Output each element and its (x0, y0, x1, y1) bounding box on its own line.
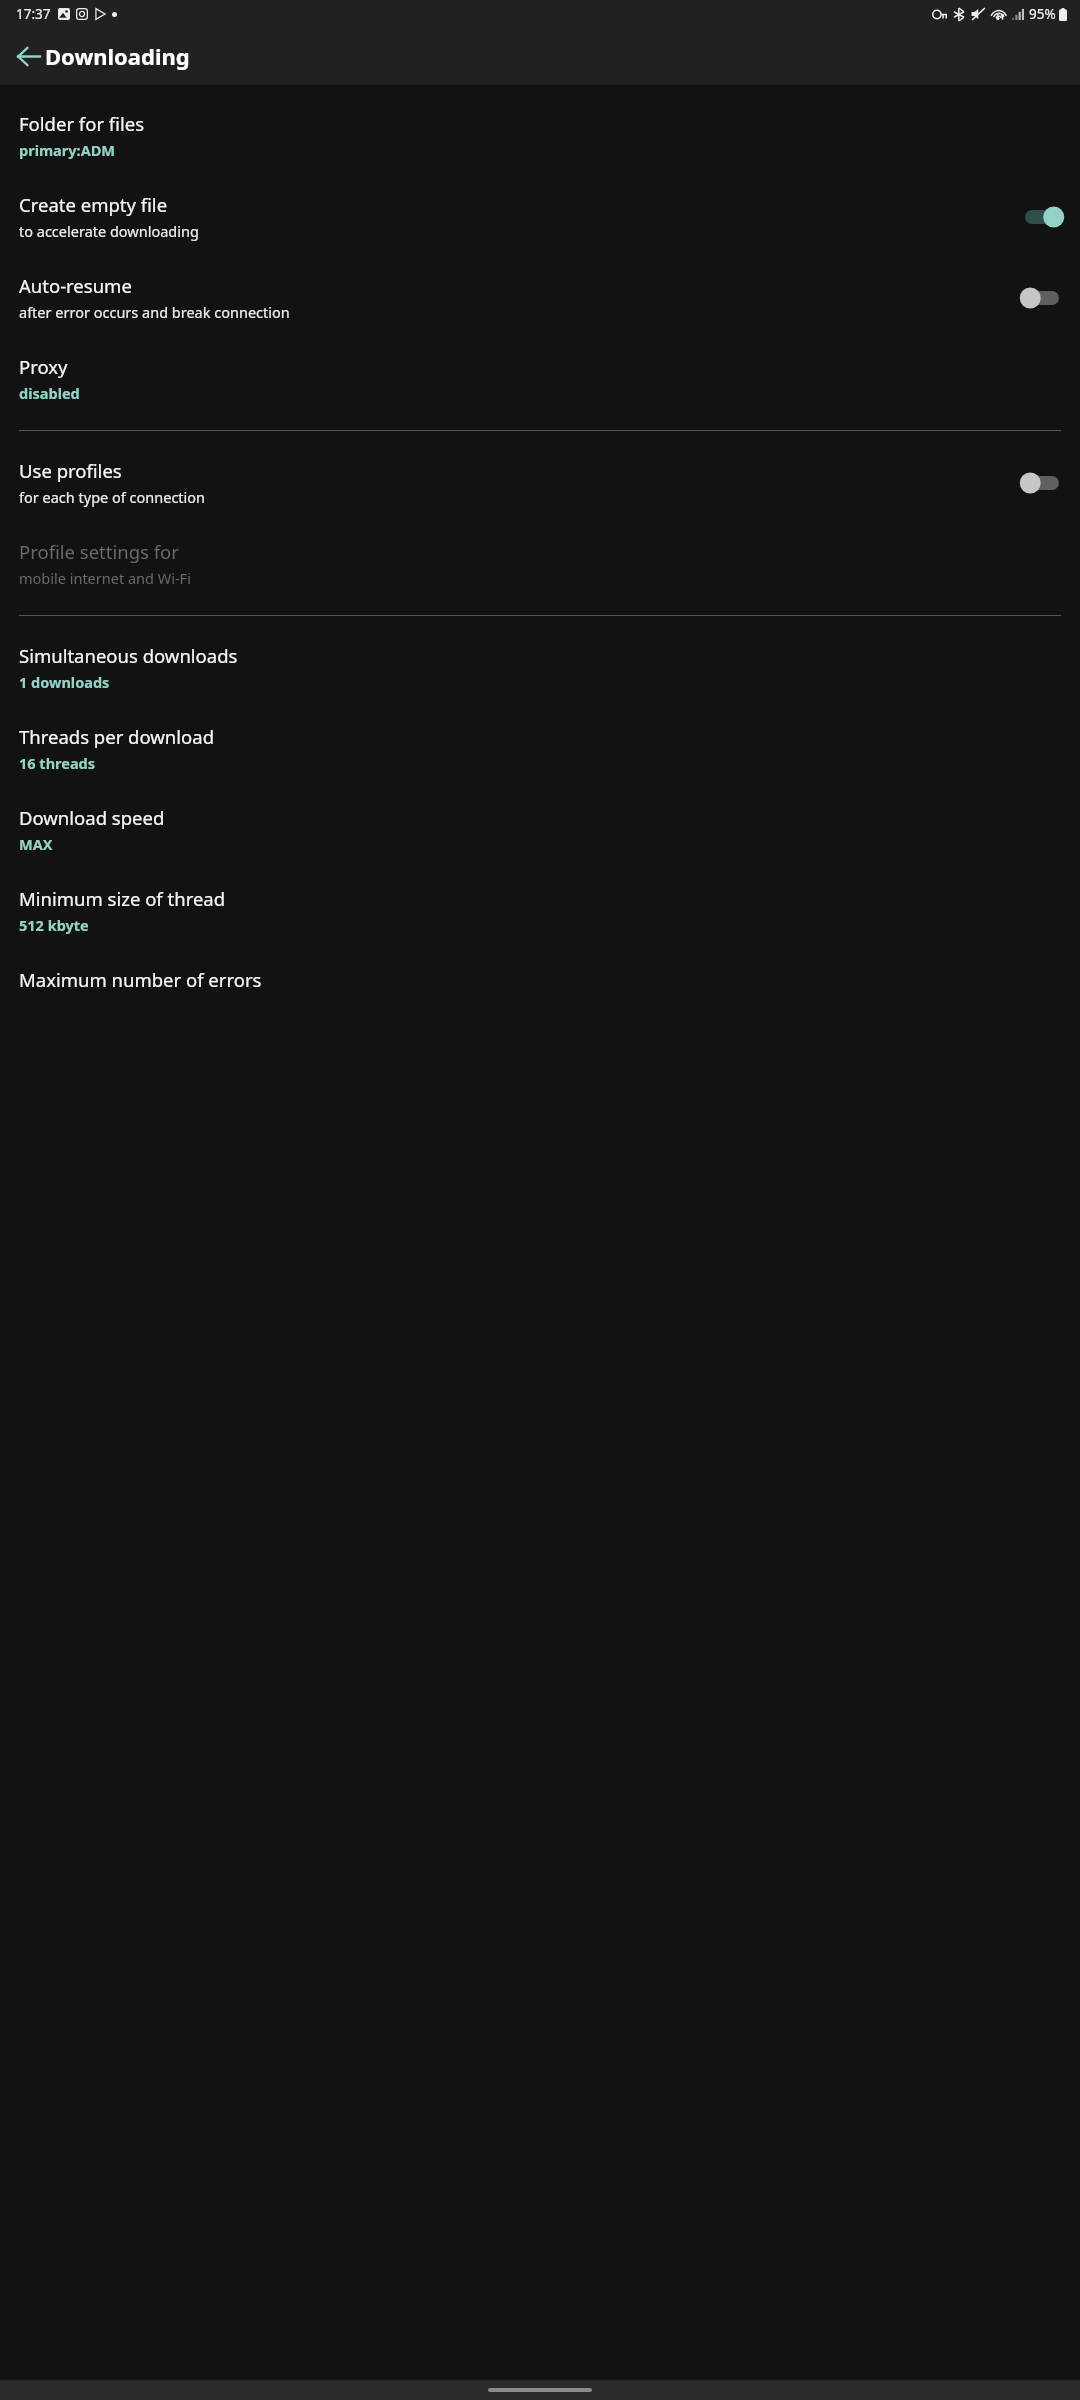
staticText: mobile internet and Wi-Fi (19, 568, 191, 588)
button[interactable]: Enabled (1019, 203, 1065, 231)
button[interactable]: Threads per download (0, 708, 1080, 789)
staticText: after error occurs and break connection (19, 302, 290, 322)
staticText: disabled (19, 383, 80, 403)
staticText: Auto-resume (19, 273, 132, 298)
staticText: Downloading (45, 41, 190, 71)
button[interactable]: Create empty file (0, 176, 1080, 257)
staticText: Create empty file (19, 192, 168, 217)
staticText: 95% (1029, 5, 1056, 23)
staticText: Proxy (19, 354, 68, 379)
staticText: Threads per download (19, 724, 215, 749)
button[interactable]: Disabled (1019, 469, 1065, 497)
staticText: Maximum number of errors (19, 967, 262, 992)
staticText: Folder for files (19, 111, 145, 136)
button[interactable]: Use profiles (0, 442, 1080, 523)
staticText: Download speed (19, 805, 165, 830)
button[interactable]: Minimum size of thread (0, 870, 1080, 951)
staticText: primary:ADM (19, 140, 115, 160)
staticText: 17:37 (16, 5, 51, 23)
staticText: MAX (19, 834, 53, 854)
staticText: to accelerate downloading (19, 221, 199, 241)
staticText: for each type of connection (19, 487, 206, 507)
button[interactable]: Proxy (0, 338, 1080, 419)
staticText: 16 threads (19, 753, 96, 773)
button[interactable]: Navigate up (4, 32, 52, 80)
button[interactable]: Download speed (0, 789, 1080, 870)
staticText: 512 kbyte (19, 915, 89, 935)
button[interactable]: Maximum number of errors (0, 951, 1080, 1008)
staticText: Simultaneous downloads (19, 643, 238, 668)
button[interactable]: Disabled (1019, 284, 1065, 312)
button[interactable]: Folder for files (0, 95, 1080, 176)
button[interactable]: Profile settings for (0, 523, 1080, 604)
staticText: Profile settings for (19, 539, 179, 564)
staticText: Minimum size of thread (19, 886, 226, 911)
staticText: 1 downloads (19, 672, 110, 692)
button[interactable]: Simultaneous downloads (0, 627, 1080, 708)
staticText: Use profiles (19, 458, 122, 483)
button[interactable]: Auto-resume (0, 257, 1080, 338)
